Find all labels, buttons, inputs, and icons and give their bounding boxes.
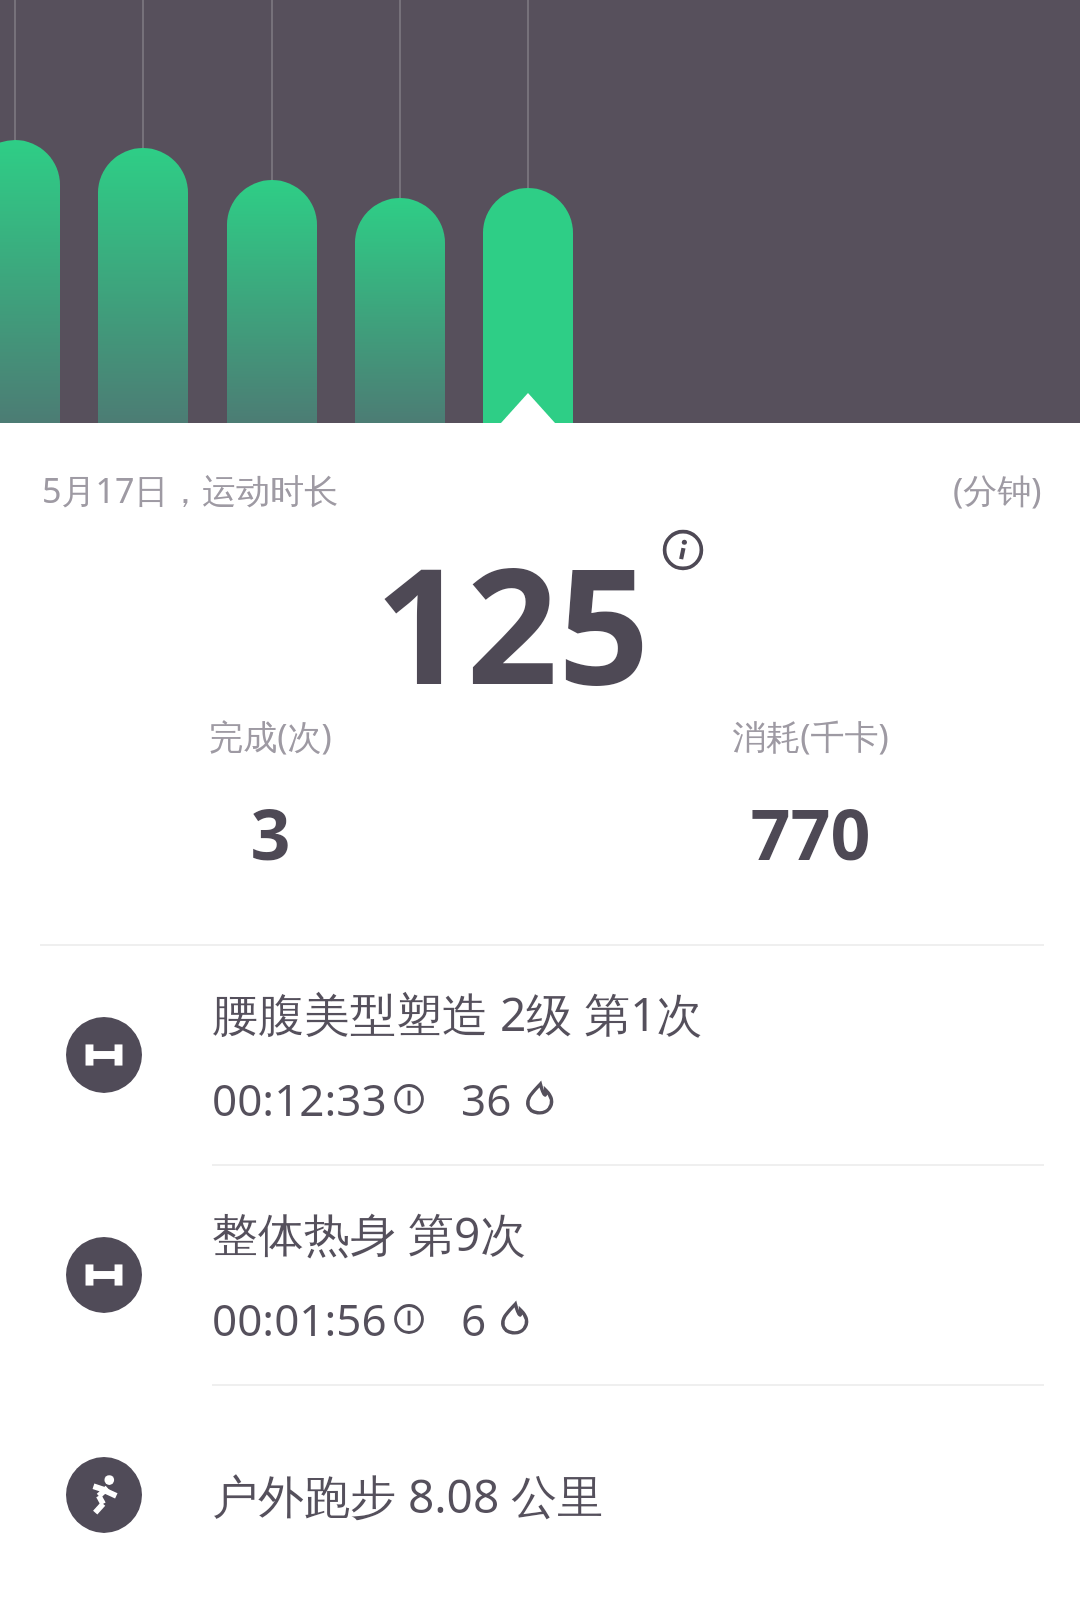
staticText: 腰腹美型塑造 2级 第1次 xyxy=(212,982,703,1045)
button[interactable]: 消耗(千卡) xyxy=(540,713,1080,880)
other: Workout xyxy=(66,1017,142,1093)
other: Workout xyxy=(66,1237,142,1313)
staticText: 36 xyxy=(461,1069,512,1129)
staticText: 完成(次) xyxy=(209,713,332,759)
button[interactable]: Workout xyxy=(0,946,1080,1166)
staticText: 125 xyxy=(375,513,650,713)
staticText: 整体热身 第9次 xyxy=(212,1202,527,1265)
staticText: 00:01:56 xyxy=(212,1289,387,1349)
staticText: 00:12:33 xyxy=(212,1069,387,1129)
button[interactable]: Running xyxy=(0,1386,1080,1604)
staticText: (分钟) xyxy=(953,467,1042,513)
staticText: 5月17日，运动时长 xyxy=(42,467,339,513)
staticText: 770 xyxy=(750,785,871,880)
staticText: 6 xyxy=(461,1289,487,1349)
button[interactable]: 完成(次) xyxy=(0,713,540,880)
button[interactable]: Info xyxy=(660,527,706,573)
other: Running xyxy=(66,1457,142,1533)
staticText: 3 xyxy=(250,785,291,880)
staticText: 户外跑步 8.08 公里 xyxy=(212,1464,604,1527)
staticText: 消耗(千卡) xyxy=(732,713,889,759)
button[interactable]: Workout xyxy=(0,1166,1080,1386)
